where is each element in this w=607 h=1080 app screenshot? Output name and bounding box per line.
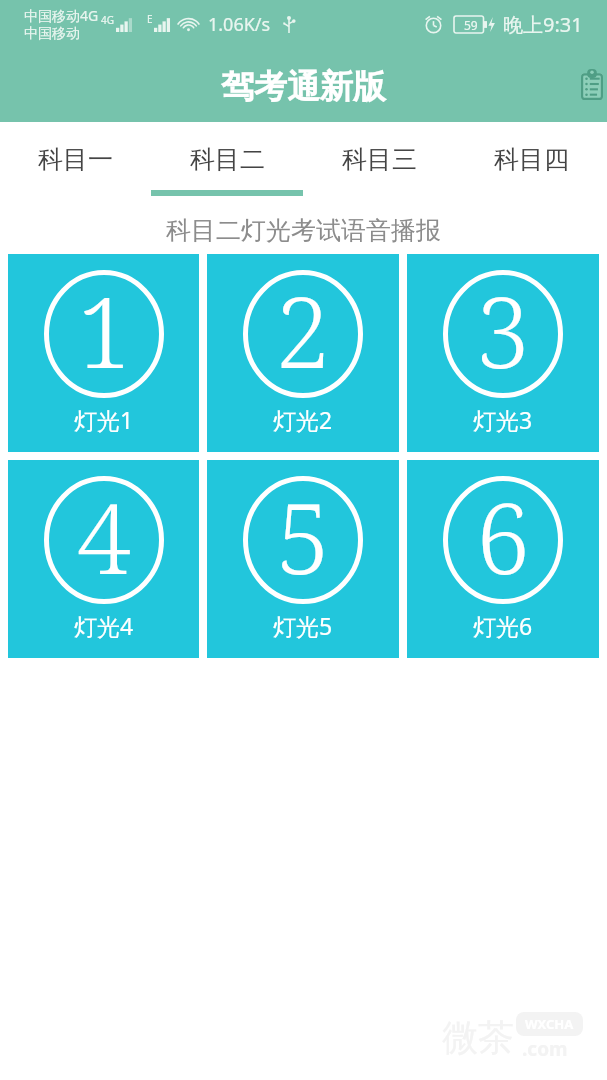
- staticText: 中国移动: [24, 25, 80, 43]
- staticText: 5: [276, 470, 331, 598]
- button[interactable]: 3: [407, 254, 599, 452]
- staticText: .com: [522, 1036, 568, 1062]
- staticText: 灯光5: [273, 610, 333, 641]
- staticText: E: [147, 12, 153, 26]
- staticText: 科目四: [494, 144, 569, 175]
- staticText: 灯光2: [273, 404, 333, 435]
- staticText: 1.06K/s: [208, 12, 271, 37]
- staticText: 灯光6: [473, 610, 533, 641]
- staticText: 灯光1: [74, 404, 134, 435]
- staticText: 4: [77, 470, 132, 598]
- button[interactable]: 4: [8, 460, 199, 658]
- staticText: 科目一: [38, 144, 113, 175]
- staticText: 1: [77, 264, 132, 392]
- button[interactable]: 科目三: [303, 122, 455, 197]
- staticText: 科目三: [342, 144, 417, 175]
- staticText: 灯光3: [473, 404, 533, 435]
- button[interactable]: 1: [8, 254, 199, 452]
- button[interactable]: 6: [407, 460, 599, 658]
- staticText: 晚上9:31: [503, 11, 583, 38]
- staticText: 59: [464, 17, 478, 33]
- staticText: 3: [476, 264, 531, 392]
- staticText: 6: [476, 470, 531, 598]
- staticText: 中国移动4G: [24, 6, 99, 25]
- staticText: 科目二灯光考试语音播报: [0, 215, 607, 246]
- button[interactable]: Exam records: [573, 65, 607, 103]
- staticText: 微茶: [442, 1015, 514, 1060]
- button[interactable]: 科目四: [455, 122, 607, 197]
- staticText: 驾考通新版: [221, 66, 386, 108]
- staticText: 4G: [101, 13, 114, 27]
- staticText: 科目二: [190, 144, 265, 175]
- button[interactable]: 科目二: [151, 122, 303, 197]
- staticText: WXCHA: [525, 1015, 574, 1033]
- staticText: 2: [276, 264, 331, 392]
- staticText: 灯光4: [74, 610, 134, 641]
- button[interactable]: 科目一: [0, 122, 151, 197]
- button[interactable]: 2: [207, 254, 399, 452]
- button[interactable]: 5: [207, 460, 399, 658]
